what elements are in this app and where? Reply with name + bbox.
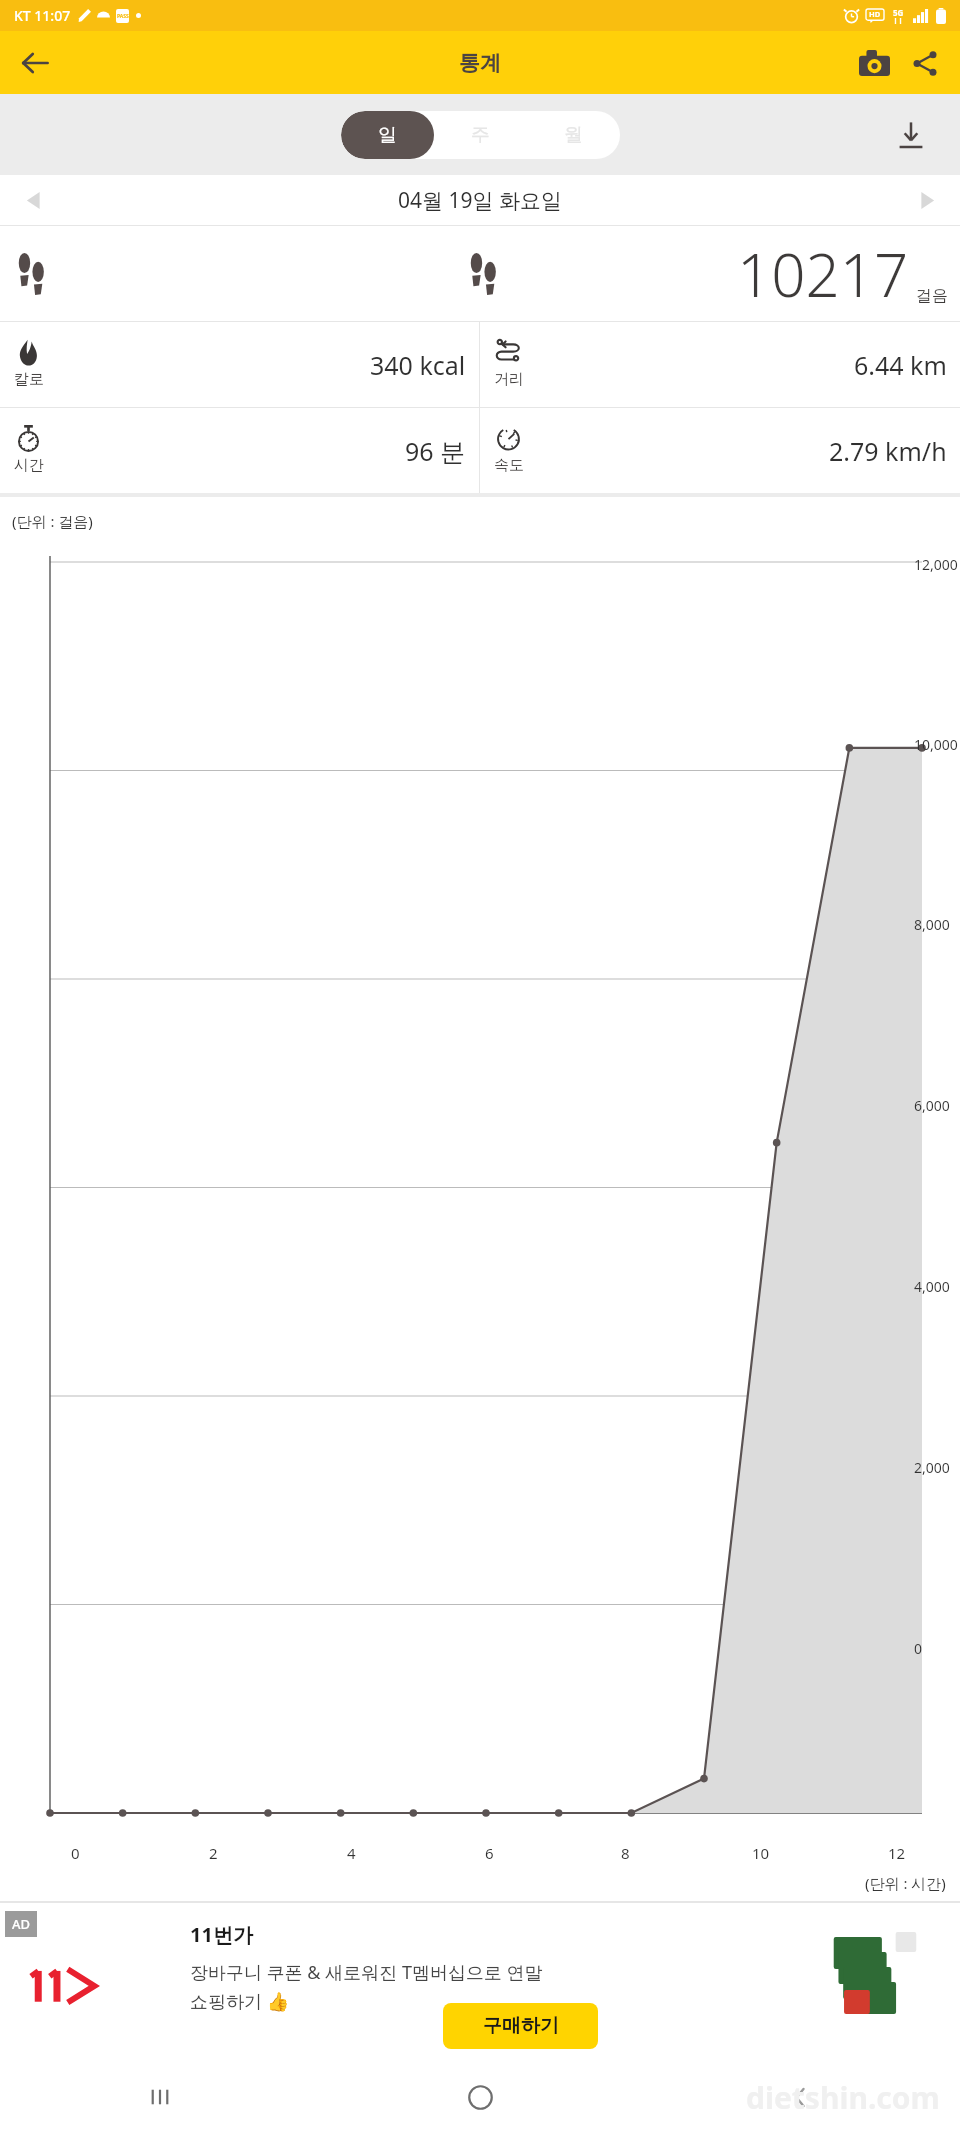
button[interactable]: 일 [341, 111, 434, 159]
staticText: HD [869, 9, 881, 19]
staticText: 2.79 km/h [829, 434, 947, 468]
staticText: dietshin.com [746, 2077, 940, 2118]
staticText: 5G [893, 7, 904, 18]
button[interactable]: Share [900, 38, 950, 88]
staticText: 8 [621, 1843, 630, 1863]
button[interactable]: AD [0, 1903, 960, 2061]
staticText: 걸음 [916, 286, 948, 306]
button[interactable]: Back [8, 36, 62, 90]
staticText: 월 [564, 123, 583, 147]
button[interactable]: Download [882, 106, 940, 164]
staticText: 주 [471, 123, 490, 147]
staticText: 96 분 [405, 434, 466, 468]
staticText: 쇼핑하기 👍 [190, 1989, 290, 2014]
staticText: 2 [209, 1843, 218, 1863]
staticText: 칼로 [14, 370, 44, 389]
staticText: 2,000 [914, 1458, 960, 1477]
button[interactable]: Next day [902, 176, 950, 224]
staticText: 12,000 [914, 555, 960, 574]
staticText: (단위 : 시간) [865, 1873, 946, 1893]
staticText: 11번가 [190, 1921, 253, 1948]
button[interactable]: Home [320, 2061, 640, 2133]
staticText: 340 kcal [370, 348, 466, 382]
staticText: 0 [71, 1843, 80, 1863]
button[interactable]: 월 [527, 111, 620, 159]
button[interactable]: 주 [434, 111, 527, 159]
staticText: 0 [914, 1639, 960, 1658]
staticText: 속도 [494, 456, 524, 475]
staticText: KT 11:07 [14, 6, 71, 25]
button[interactable]: 시간 [0, 408, 479, 493]
staticText: PASS [117, 13, 129, 20]
staticText: 시간 [14, 456, 44, 475]
staticText: 8,000 [914, 915, 960, 934]
staticText: 6,000 [914, 1096, 960, 1115]
staticText: 10,000 [914, 735, 960, 754]
staticText: 10 [752, 1843, 770, 1863]
button[interactable]: 칼로 [0, 322, 479, 407]
staticText: 일 [378, 123, 397, 147]
button[interactable]: 구매하기 [443, 2003, 598, 2049]
button[interactable]: Back [640, 2061, 960, 2133]
button[interactable]: Recent apps [0, 2061, 320, 2133]
staticText: 구매하기 [483, 2014, 559, 2038]
staticText: 4,000 [914, 1277, 960, 1296]
staticText: 거리 [494, 370, 524, 389]
button[interactable]: Camera [848, 37, 900, 89]
staticText: (단위 : 걸음) [12, 511, 93, 531]
staticText: 장바구니 쿠폰 & 새로워진 T멤버십으로 연말 [190, 1960, 543, 1985]
button[interactable]: 속도 [480, 408, 960, 493]
staticText: 4 [347, 1843, 356, 1863]
staticText: 6 [485, 1843, 494, 1863]
staticText: 6.44 km [854, 348, 947, 382]
staticText: 04월 19일 화요일 [398, 186, 562, 215]
button[interactable]: Previous day [10, 176, 58, 224]
staticText: 통계 [459, 50, 501, 76]
staticText: 10217 [737, 233, 909, 315]
staticText: AD [12, 1915, 31, 1933]
staticText: 12 [888, 1843, 906, 1863]
button[interactable]: 거리 [480, 322, 960, 407]
